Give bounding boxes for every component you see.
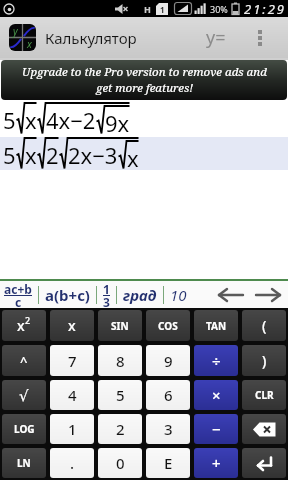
button[interactable]: COS bbox=[146, 310, 190, 341]
staticText: 2 bbox=[25, 314, 31, 326]
button[interactable]: Upgrade to the Pro version to remove ads… bbox=[1, 60, 287, 100]
button[interactable]: 1 bbox=[50, 414, 94, 444]
staticText: 4 bbox=[68, 385, 77, 405]
button[interactable] bbox=[258, 30, 262, 46]
button[interactable]: LN bbox=[2, 448, 46, 478]
staticText: SIN bbox=[111, 319, 129, 333]
staticText: LOG bbox=[14, 422, 35, 436]
staticText: + bbox=[212, 453, 221, 473]
button[interactable] bbox=[242, 414, 286, 444]
staticText: 9 bbox=[164, 351, 173, 371]
staticText: − bbox=[212, 419, 221, 439]
button[interactable]: град bbox=[123, 285, 157, 305]
button[interactable]: ) bbox=[242, 345, 286, 376]
button[interactable]: ac+b bbox=[4, 281, 32, 308]
staticText: 1 bbox=[160, 4, 165, 15]
staticText: E bbox=[164, 453, 173, 473]
button[interactable]: 2 bbox=[98, 414, 142, 444]
staticText: 8 bbox=[116, 351, 125, 371]
button[interactable]: ^ bbox=[2, 345, 46, 376]
staticText: 1 bbox=[103, 281, 110, 297]
button[interactable]: + bbox=[194, 448, 238, 478]
button[interactable]: 1 bbox=[103, 281, 110, 308]
staticText: × bbox=[212, 385, 221, 405]
staticText: 10 bbox=[170, 285, 187, 305]
staticText: ^ bbox=[20, 352, 28, 370]
staticText: get more features! bbox=[96, 80, 194, 96]
button[interactable]: y= bbox=[206, 25, 226, 50]
button[interactable] bbox=[217, 287, 245, 303]
button[interactable]: 5 bbox=[98, 380, 142, 410]
staticText: CLR bbox=[255, 388, 274, 402]
button[interactable]: 7 bbox=[50, 345, 94, 376]
staticText: ( bbox=[262, 316, 267, 335]
staticText: H bbox=[144, 3, 151, 15]
staticText: 3 bbox=[164, 419, 173, 439]
staticText: ÷ bbox=[212, 351, 221, 371]
staticText: x bbox=[25, 140, 37, 170]
button[interactable]: 4 bbox=[50, 380, 94, 410]
button[interactable]: . bbox=[50, 448, 94, 478]
staticText: 5 bbox=[3, 140, 16, 170]
staticText: 2 bbox=[46, 140, 59, 170]
button[interactable]: 8 bbox=[98, 345, 142, 376]
button[interactable] bbox=[242, 448, 286, 478]
button[interactable]: ÷ bbox=[194, 345, 238, 376]
button[interactable]: ( bbox=[242, 310, 286, 341]
button[interactable]: 9 bbox=[146, 345, 190, 376]
staticText: 7 bbox=[68, 351, 77, 371]
staticText: 6 bbox=[164, 385, 173, 405]
staticText: x bbox=[127, 143, 139, 170]
staticText: x bbox=[68, 316, 76, 335]
button[interactable]: a(b+c) bbox=[45, 285, 90, 305]
staticText: COS bbox=[158, 319, 178, 333]
button[interactable]: 0 bbox=[98, 448, 142, 478]
staticText: c bbox=[15, 294, 22, 308]
staticText: x bbox=[17, 316, 25, 335]
button[interactable]: 3 bbox=[146, 414, 190, 444]
staticText: 1 bbox=[68, 419, 77, 439]
staticText: Калькулятор bbox=[45, 28, 137, 48]
staticText: 9x bbox=[105, 108, 130, 135]
button[interactable]: TAN bbox=[194, 310, 238, 341]
staticText: 5 bbox=[3, 105, 16, 135]
button[interactable]: √ bbox=[2, 380, 46, 410]
staticText: a(b+c) bbox=[45, 285, 90, 305]
button[interactable]: − bbox=[194, 414, 238, 444]
staticText: град bbox=[123, 285, 157, 305]
button[interactable]: E bbox=[146, 448, 190, 478]
button[interactable]: x bbox=[50, 310, 94, 341]
staticText: y= bbox=[206, 25, 226, 50]
staticText: √ bbox=[19, 387, 29, 404]
staticText: 3 bbox=[103, 294, 110, 308]
button[interactable]: LOG bbox=[2, 414, 46, 444]
staticText: y bbox=[13, 24, 18, 38]
button[interactable]: 10 bbox=[170, 285, 187, 305]
staticText: 5 bbox=[116, 385, 125, 405]
button[interactable]: x bbox=[2, 310, 46, 341]
staticText: 2 bbox=[116, 419, 125, 439]
button[interactable]: 6 bbox=[146, 380, 190, 410]
staticText: . bbox=[70, 453, 75, 473]
button[interactable] bbox=[254, 287, 282, 303]
staticText: LN bbox=[17, 456, 31, 470]
staticText: Upgrade to the Pro version to remove ads… bbox=[22, 64, 267, 80]
staticText: x bbox=[27, 37, 32, 51]
button[interactable]: CLR bbox=[242, 380, 286, 410]
staticText: TAN bbox=[206, 319, 227, 333]
staticText: 21:29 bbox=[244, 0, 286, 17]
staticText: 30% bbox=[210, 3, 228, 15]
staticText: ) bbox=[262, 351, 267, 370]
button[interactable]: × bbox=[194, 380, 238, 410]
staticText: 0 bbox=[116, 453, 125, 473]
button[interactable]: SIN bbox=[98, 310, 142, 341]
staticText: 4x−2 bbox=[46, 105, 96, 135]
staticText: 2x−3 bbox=[68, 140, 118, 170]
staticText: ac+b bbox=[4, 281, 32, 297]
staticText: x bbox=[25, 105, 37, 135]
